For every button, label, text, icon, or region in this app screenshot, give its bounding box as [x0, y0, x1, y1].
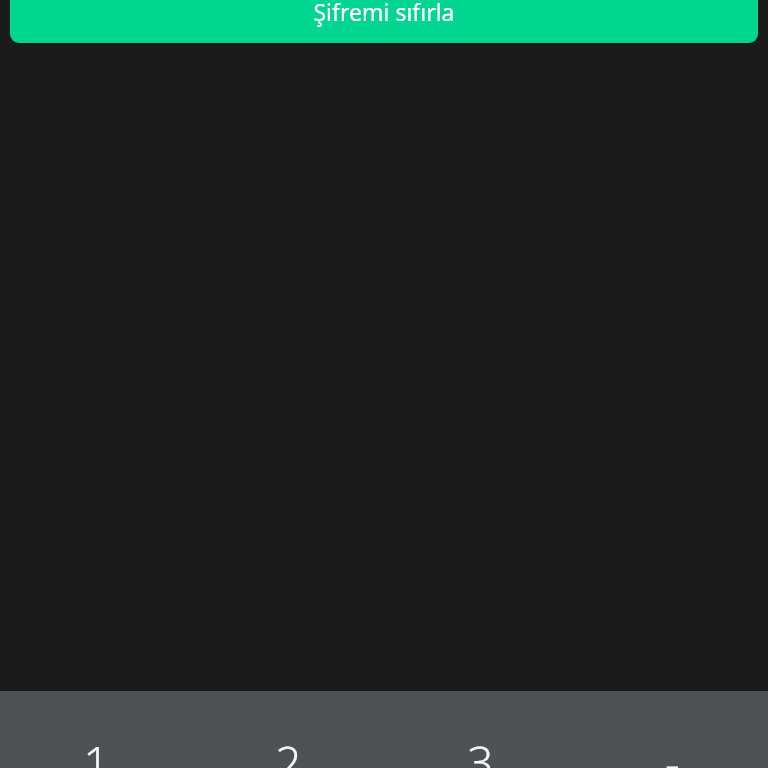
- staticText: Şifremi sıfırla: [313, 0, 455, 27]
- staticText: 2: [275, 731, 302, 768]
- button[interactable]: Key 1: [0, 691, 192, 768]
- staticText: -: [665, 731, 680, 768]
- button[interactable]: Şifremi sıfırla: [10, 0, 758, 43]
- button[interactable]: Key 3: [384, 691, 576, 768]
- staticText: 3: [467, 731, 494, 768]
- staticText: 1: [83, 731, 110, 768]
- button[interactable]: Key 2: [192, 691, 384, 768]
- button[interactable]: Key -: [576, 691, 768, 768]
